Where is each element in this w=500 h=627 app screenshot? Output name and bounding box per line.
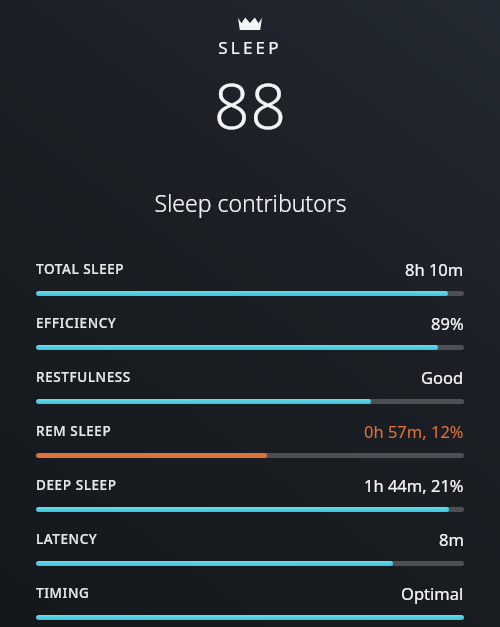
staticText: TIMING xyxy=(36,584,90,602)
staticText: 89% xyxy=(431,312,464,334)
staticText: Sleep contributors xyxy=(154,187,347,218)
button[interactable]: REM SLEEP xyxy=(36,410,464,464)
staticText: DEEP SLEEP xyxy=(36,476,117,494)
staticText: Optimal xyxy=(401,582,464,604)
staticText: RESTFULNESS xyxy=(36,368,131,386)
staticText: SLEEP xyxy=(218,36,282,59)
staticText: LATENCY xyxy=(36,530,98,548)
staticText: Good xyxy=(421,366,464,388)
staticText: TOTAL SLEEP xyxy=(36,260,125,278)
button[interactable]: TOTAL SLEEP xyxy=(36,248,464,302)
staticText: 1h 44m, 21% xyxy=(364,474,464,496)
staticText: 8m xyxy=(439,528,464,550)
staticText: 0h 57m, 12% xyxy=(364,420,464,442)
button[interactable]: DEEP SLEEP xyxy=(36,464,464,518)
staticText: EFFICIENCY xyxy=(36,314,117,332)
staticText: 8h 10m xyxy=(405,258,464,280)
other: Sleep crown xyxy=(238,16,262,30)
button[interactable]: EFFICIENCY xyxy=(36,302,464,356)
button[interactable]: LATENCY xyxy=(36,518,464,572)
button[interactable]: TIMING xyxy=(36,572,464,626)
staticText: REM SLEEP xyxy=(36,422,112,440)
staticText: 88 xyxy=(214,63,287,147)
button[interactable]: RESTFULNESS xyxy=(36,356,464,410)
